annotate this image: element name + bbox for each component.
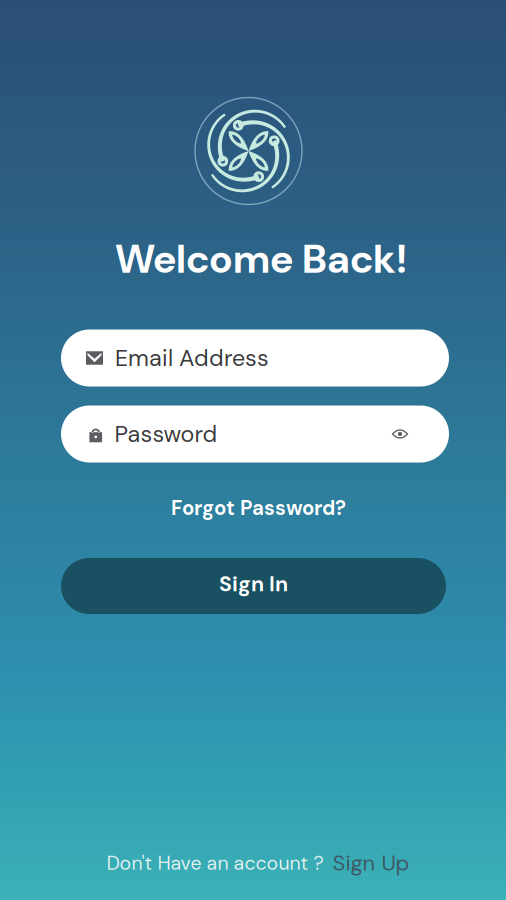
staticText: Sign Up	[332, 849, 409, 877]
button[interactable]: Password	[61, 405, 449, 462]
button[interactable]: Email Address	[61, 329, 449, 386]
staticText: Welcome Back!	[115, 233, 407, 285]
staticText: Password	[114, 419, 217, 449]
staticText: Sign In	[219, 570, 288, 598]
staticText: Don't Have an account ?	[106, 850, 323, 876]
button[interactable]: Sign Up	[323, 849, 409, 877]
staticText: Email Address	[115, 343, 269, 373]
staticText: Forgot Password?	[171, 495, 346, 521]
button[interactable]: Forgot Password?	[161, 488, 356, 528]
button[interactable]: Sign In	[61, 558, 446, 614]
